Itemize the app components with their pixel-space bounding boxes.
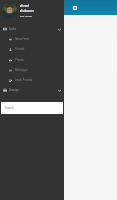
button[interactable]: Groups: [0, 85, 64, 95]
staticText: Links: [9, 27, 16, 31]
staticText: ahmed: [20, 4, 29, 7]
staticText: Search: [5, 106, 14, 110]
button[interactable]: Messages: [0, 65, 64, 75]
button[interactable]: Open navigation drawer: [69, 2, 80, 13]
button[interactable]: Photos: [0, 55, 64, 65]
staticText: Photos: [15, 58, 24, 62]
button[interactable]: Search: [1, 102, 63, 114]
button[interactable]: News Feed: [0, 34, 64, 44]
staticText: News Feed: [15, 37, 29, 41]
button[interactable]: Invite Friends: [0, 75, 64, 85]
button[interactable]: Links: [0, 24, 64, 34]
button[interactable]: ahmed: [0, 0, 64, 20]
staticText: Groups: [9, 88, 19, 92]
staticText: Friends: [15, 47, 25, 51]
staticText: Invite Friends: [15, 78, 33, 82]
staticText: Edit Profile: [20, 14, 33, 17]
staticText: Messages: [15, 68, 28, 72]
staticText: abohassan: [20, 9, 34, 12]
button[interactable]: Friends: [0, 44, 64, 54]
